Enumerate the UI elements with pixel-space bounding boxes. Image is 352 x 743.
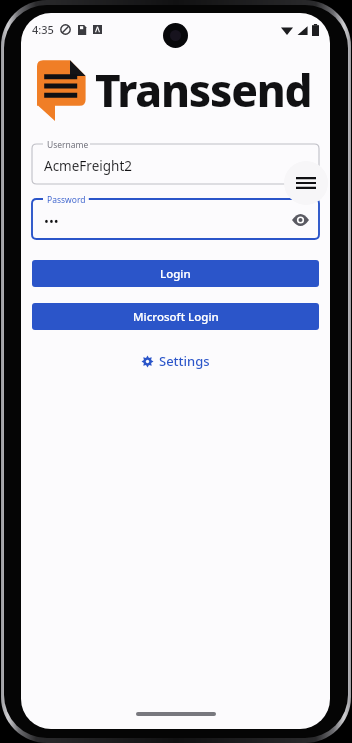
staticText: Settings bbox=[159, 352, 210, 370]
staticText: Username bbox=[47, 139, 89, 151]
staticText: Microsoft Login bbox=[133, 309, 219, 325]
staticText: Login bbox=[160, 266, 191, 282]
button[interactable]: Show password bbox=[289, 209, 311, 231]
button[interactable]: Password bbox=[32, 199, 319, 239]
staticText: ••• bbox=[44, 212, 59, 230]
staticText: Transsend bbox=[95, 60, 312, 120]
staticText: AcmeFreight2 bbox=[44, 157, 132, 175]
staticText: Password bbox=[47, 194, 86, 206]
staticText: 4:35 bbox=[32, 22, 54, 37]
button[interactable]: Open menu bbox=[284, 161, 328, 205]
button[interactable]: Microsoft Login bbox=[32, 303, 319, 330]
button[interactable]: Settings bbox=[32, 348, 319, 374]
button[interactable]: Login bbox=[32, 260, 319, 287]
button[interactable]: Username bbox=[32, 144, 319, 184]
